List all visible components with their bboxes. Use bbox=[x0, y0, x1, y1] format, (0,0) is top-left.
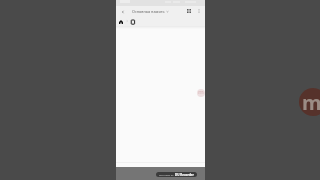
button[interactable]: Internal storage bbox=[128, 17, 137, 26]
button[interactable]: Home bbox=[117, 17, 126, 26]
button[interactable]: Back bbox=[118, 7, 127, 16]
staticText: Recorded by bbox=[159, 173, 175, 176]
staticText: Основная память bbox=[132, 9, 165, 14]
staticText: m bbox=[302, 89, 320, 116]
button[interactable]: More options bbox=[194, 6, 204, 16]
staticText: DU Recorder bbox=[175, 173, 194, 177]
staticText: m bbox=[198, 89, 204, 96]
button[interactable]: Grid view bbox=[184, 6, 194, 16]
